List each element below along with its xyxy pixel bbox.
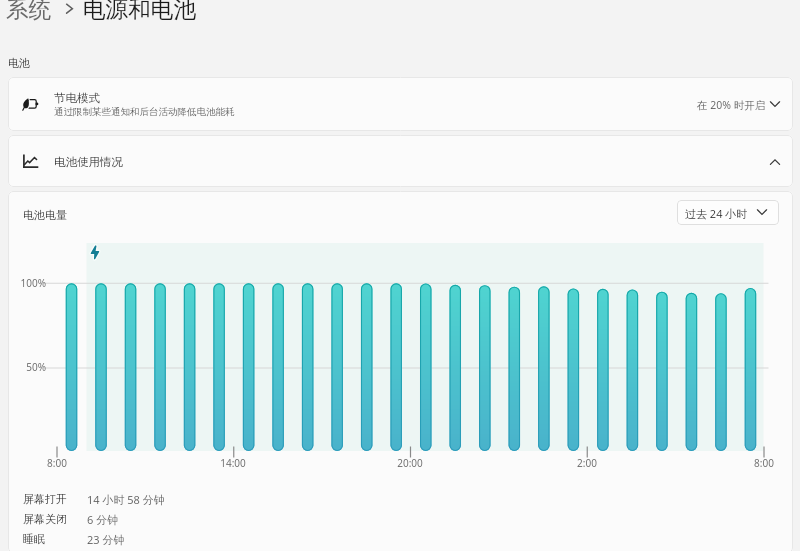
- staticText: 8:00: [27, 456, 87, 470]
- staticText: 50%: [10, 360, 46, 374]
- staticText: 8:00: [734, 456, 793, 470]
- staticText: 电源和电池: [83, 0, 196, 23]
- staticText: 14:00: [203, 456, 263, 470]
- button[interactable]: 电池使用情况: [8, 135, 793, 187]
- staticText: 电池电量: [23, 208, 67, 222]
- staticText: 过去 24 小时: [685, 206, 748, 221]
- staticText: 屏幕关闭: [23, 512, 67, 526]
- button[interactable]: 过去 24 小时: [677, 200, 779, 225]
- staticText: 100%: [10, 276, 46, 290]
- staticText: 电池: [8, 56, 30, 70]
- staticText: 在 20% 时开启: [697, 98, 766, 112]
- staticText: 20:00: [380, 456, 440, 470]
- staticText: 2:00: [557, 456, 617, 470]
- other: Battery saver: [22, 97, 39, 114]
- staticText: 节电模式: [54, 91, 100, 105]
- staticText: 通过限制某些通知和后台活动降低电池能耗: [54, 106, 235, 118]
- button[interactable]: Collapse battery usage: [763, 150, 787, 174]
- staticText: 屏幕打开: [23, 492, 67, 506]
- button[interactable]: Battery saver: [8, 77, 793, 131]
- staticText: 23 分钟: [87, 532, 125, 547]
- staticText: 电池使用情况: [54, 155, 123, 169]
- button[interactable]: 系统: [6, 0, 52, 23]
- staticText: 系统: [6, 0, 52, 23]
- staticText: 6 分钟: [87, 512, 119, 527]
- button[interactable]: Expand battery saver settings: [763, 92, 787, 116]
- staticText: 14 小时 58 分钟: [87, 492, 165, 507]
- staticText: 睡眠: [23, 532, 45, 546]
